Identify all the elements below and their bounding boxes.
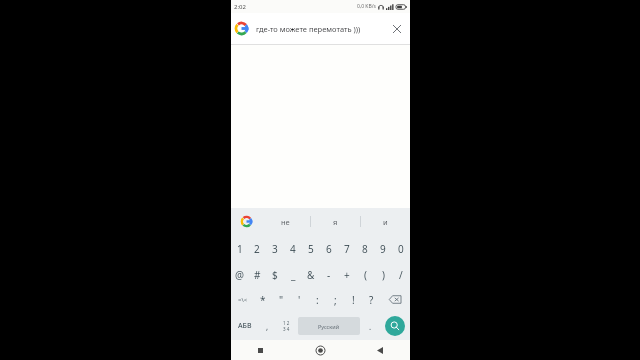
button[interactable]: 2 (248, 235, 266, 262)
button[interactable]: ; (326, 287, 344, 312)
staticText: - (327, 268, 331, 282)
button[interactable]: . (362, 312, 379, 340)
button[interactable]: @ (231, 262, 248, 287)
staticText: 2 (254, 242, 260, 256)
staticText: 3 4 (283, 326, 290, 332)
button[interactable]: Русский (298, 317, 360, 335)
staticText: @ (235, 268, 244, 282)
button[interactable]: не (261, 208, 310, 235)
button[interactable]: Numeric keypad (276, 312, 296, 340)
button[interactable]: я (311, 208, 360, 235)
staticText: я (333, 217, 338, 227)
button[interactable]: / (392, 262, 410, 287)
button[interactable]: 5 (302, 235, 320, 262)
button[interactable]: Backspace (380, 287, 410, 312)
staticText: 3 (272, 242, 278, 256)
button[interactable]: 9 (374, 235, 392, 262)
staticText: 4 (290, 242, 296, 256)
button[interactable]: Back (350, 340, 410, 360)
staticText: 0 (398, 242, 404, 256)
staticText: 2:02 (234, 3, 246, 11)
button[interactable]: # (248, 262, 266, 287)
button[interactable]: - (320, 262, 338, 287)
staticText: $ (272, 268, 278, 282)
button[interactable]: =\< (231, 287, 254, 312)
staticText: ) (382, 268, 385, 282)
staticText: 9 (380, 242, 386, 256)
staticText: / (399, 268, 403, 282)
button[interactable]: Search (385, 316, 405, 336)
button[interactable]: + (338, 262, 356, 287)
staticText: ? (369, 293, 374, 307)
button[interactable]: 4 (284, 235, 302, 262)
staticText: Русский (318, 323, 340, 330)
button[interactable]: ( (356, 262, 374, 287)
button[interactable]: : (308, 287, 326, 312)
staticText: : (316, 293, 319, 307)
staticText: + (344, 268, 350, 282)
button[interactable]: " (272, 287, 290, 312)
staticText: 7 (344, 242, 350, 256)
staticText: 0,0 KB/s (357, 3, 376, 10)
button[interactable]: ! (344, 287, 362, 312)
staticText: АБВ (238, 321, 252, 331)
staticText: где-то можете перемотать ))) (256, 24, 388, 34)
staticText: 6 (326, 242, 332, 256)
staticText: =\< (238, 296, 248, 304)
staticText: * (260, 293, 266, 307)
button[interactable]: где-то можете перемотать ))) (231, 13, 410, 44)
button[interactable]: ' (290, 287, 308, 312)
staticText: 5 (308, 242, 314, 256)
button[interactable]: Recent apps (231, 340, 290, 360)
staticText: # (254, 268, 261, 282)
button[interactable]: Home (290, 340, 350, 360)
staticText: ; (334, 293, 337, 307)
staticText: и (383, 217, 388, 227)
button[interactable]: и (361, 208, 410, 235)
button[interactable]: Clear search (388, 20, 406, 38)
button[interactable]: 8 (356, 235, 374, 262)
button[interactable]: 1 (231, 235, 248, 262)
staticText: ! (352, 293, 355, 307)
button[interactable]: & (302, 262, 320, 287)
staticText: ' (298, 293, 301, 307)
button[interactable]: Google search suggestions (231, 208, 261, 235)
button[interactable]: ? (362, 287, 380, 312)
button[interactable]: , (259, 312, 276, 340)
staticText: & (307, 268, 315, 282)
button[interactable]: * (254, 287, 272, 312)
staticText: 1 (237, 242, 243, 256)
staticText: 8 (362, 242, 368, 256)
staticText: 1 2 (283, 320, 290, 326)
button[interactable]: $ (266, 262, 284, 287)
button[interactable]: _ (284, 262, 302, 287)
button[interactable]: 3 (266, 235, 284, 262)
staticText: ( (364, 268, 367, 282)
staticText: " (279, 293, 284, 307)
button[interactable]: 0 (392, 235, 410, 262)
button[interactable]: ) (374, 262, 392, 287)
button[interactable]: 6 (320, 235, 338, 262)
staticText: , (266, 321, 269, 332)
button[interactable]: 7 (338, 235, 356, 262)
staticText: не (281, 217, 290, 227)
staticText: . (369, 321, 372, 332)
staticText: _ (291, 268, 296, 282)
button[interactable]: АБВ (231, 312, 259, 340)
